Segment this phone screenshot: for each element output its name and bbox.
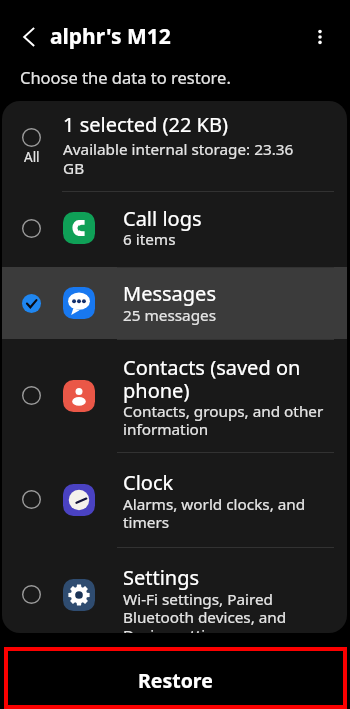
button[interactable]: Navigate up	[11, 19, 47, 55]
staticText: Messages	[123, 280, 347, 307]
staticText: Contacts, groups, and other information	[123, 401, 347, 440]
button[interactable]: Restore	[8, 651, 343, 705]
button[interactable]: Contacts (saved on phone)	[2, 339, 347, 452]
staticText: Wi-Fi settings, Paired Bluetooth devices…	[123, 589, 347, 633]
button[interactable]: Messages	[2, 267, 347, 339]
staticText: 1 selected (22 KB)	[63, 111, 228, 138]
staticText: 6 items	[123, 229, 347, 250]
button[interactable]: More options	[302, 19, 338, 55]
staticText: Alarms, world clocks, and timers	[123, 494, 347, 533]
staticText: Settings	[123, 564, 347, 591]
button[interactable]: Settings	[2, 547, 347, 633]
staticText: Choose the data to restore.	[20, 66, 231, 88]
staticText: All	[24, 148, 41, 166]
staticText: Restore	[138, 667, 213, 694]
staticText: Contacts (saved on phone)	[123, 354, 347, 404]
button[interactable]: Call logs	[2, 189, 347, 267]
staticText: Call logs	[123, 205, 347, 232]
staticText: alphr's M12	[50, 22, 171, 51]
staticText: 25 messages	[123, 305, 347, 326]
button[interactable]: Clock	[2, 452, 347, 547]
button[interactable]: All	[2, 101, 347, 189]
staticText: Clock	[123, 469, 347, 496]
staticText: Available internal storage: 23.36 GB	[63, 139, 294, 178]
